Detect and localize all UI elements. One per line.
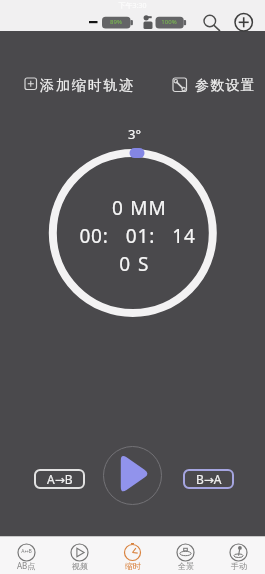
button[interactable]: AB点 [0,536,53,574]
staticText: 00: 01: 14 [5,223,265,249]
staticText: B→A [196,471,222,487]
staticText: 手动 [231,561,247,571]
button[interactable] [200,11,224,31]
staticText: 0 S [2,251,265,277]
staticText: 缩时 [125,561,141,571]
button[interactable]: 视频 [53,536,106,574]
button[interactable] [233,12,255,32]
button[interactable] [103,446,162,505]
staticText: 89% [102,18,130,27]
button[interactable]: 全景 [159,536,212,574]
button[interactable]: B→A [183,469,234,489]
button[interactable]: 添加缩时轨迹 [22,74,265,94]
staticText: 3° [2,125,265,143]
staticText: 视频 [72,561,88,571]
staticText: A→B [47,471,73,487]
staticText: 参数设置 [195,77,256,95]
staticText: 100% [155,18,183,27]
staticText: 全景 [178,561,194,571]
button[interactable]: 手动 [212,536,265,574]
staticText: 添加缩时轨迹 [40,77,136,95]
staticText: A↔B [13,548,40,557]
button[interactable]: 缩时 [106,536,159,574]
button[interactable]: A→B [34,469,85,489]
staticText: 0 MM [7,195,265,221]
staticText: AB点 [17,560,36,571]
button[interactable]: 参数设置 [171,74,265,94]
